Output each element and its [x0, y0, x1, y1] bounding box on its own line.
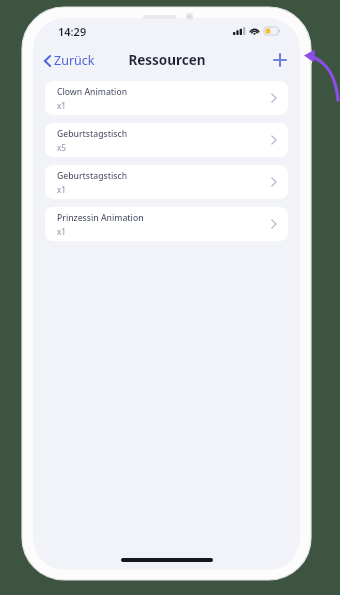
- staticText: Prinzessin Animation: [57, 212, 144, 224]
- button[interactable]: Prinzessin Animation: [45, 207, 288, 241]
- button[interactable]: Geburtstagstisch: [45, 165, 288, 199]
- staticText: Geburtstagstisch: [57, 128, 128, 140]
- staticText: Geburtstagstisch: [57, 170, 128, 182]
- button[interactable]: Zurück: [40, 48, 99, 73]
- staticText: Zurück: [54, 52, 95, 69]
- staticText: 14:29: [58, 24, 87, 39]
- staticText: x1: [57, 226, 67, 237]
- button[interactable]: Geburtstagstisch: [45, 123, 288, 157]
- staticText: x1: [57, 184, 67, 195]
- staticText: x1: [57, 100, 67, 111]
- staticText: x5: [57, 142, 67, 153]
- staticText: Ressourcen: [128, 51, 206, 69]
- staticText: Clown Animation: [57, 86, 128, 98]
- button[interactable]: Hinzufügen: [269, 49, 291, 71]
- button[interactable]: Clown Animation: [45, 81, 288, 115]
